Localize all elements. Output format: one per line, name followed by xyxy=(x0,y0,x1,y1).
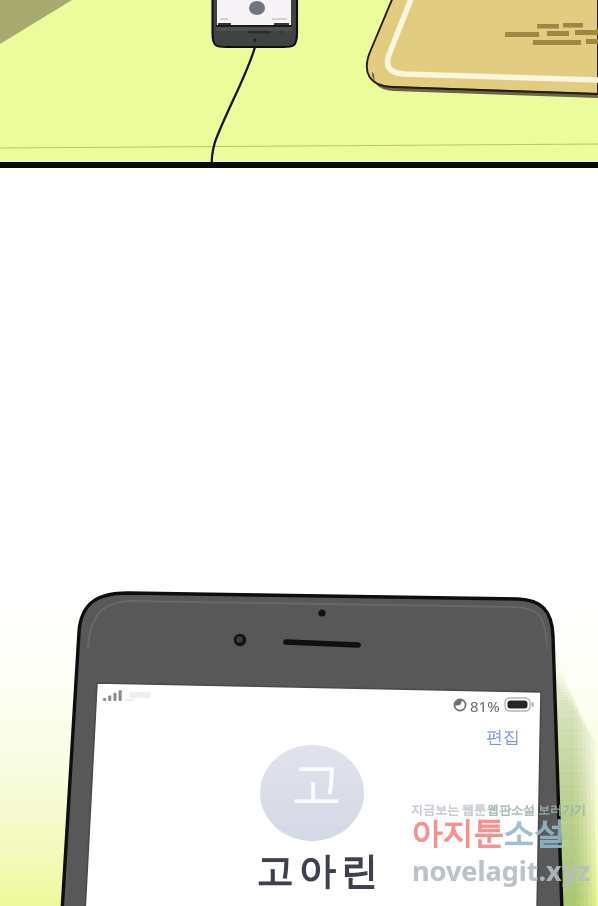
button[interactable]: Contact photo xyxy=(258,743,366,843)
button[interactable] xyxy=(478,720,526,752)
button[interactable] xyxy=(240,845,390,895)
